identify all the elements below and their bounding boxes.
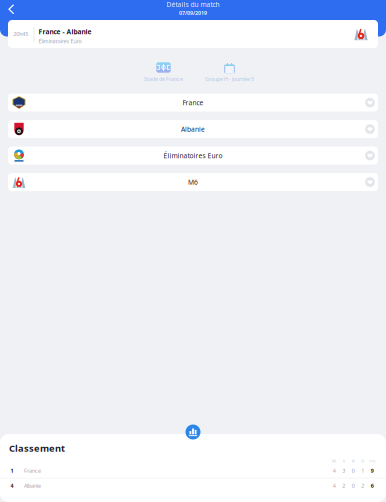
staticText: M — [332, 458, 336, 464]
staticText: 1 — [361, 467, 364, 474]
staticText: 6 — [371, 482, 374, 489]
staticText: 9 — [371, 467, 374, 474]
staticText: 4 — [333, 467, 336, 474]
staticText: Groupe H - Journée 5 — [205, 75, 254, 83]
button[interactable]: 1 — [0, 464, 386, 478]
button[interactable]: Ajouter aux favoris — [362, 120, 377, 138]
staticText: Classement — [9, 442, 65, 454]
staticText: 0 — [352, 467, 355, 474]
button[interactable]: Albanie — [8, 120, 378, 138]
button[interactable]: Éliminatoires Euro — [8, 147, 378, 165]
button[interactable]: Retour — [0, 0, 23, 16]
staticText: M6 — [188, 178, 198, 187]
staticText: Albanie — [24, 482, 41, 489]
staticText: 1 — [10, 467, 13, 474]
button[interactable]: Ajouter aux favoris — [362, 173, 377, 191]
staticText: France — [182, 98, 203, 107]
staticText: N — [352, 458, 355, 464]
staticText: 07/09/2019 — [179, 9, 207, 16]
staticText: Détails du match — [166, 0, 219, 9]
staticText: 2 — [342, 482, 345, 489]
staticText: D — [361, 458, 364, 464]
staticText: PTS — [369, 458, 375, 464]
button[interactable]: Ajouter aux favoris — [362, 94, 377, 112]
staticText: Éliminatoires Euro — [38, 38, 81, 45]
staticText: 4 — [10, 482, 13, 489]
staticText: 0 — [352, 482, 355, 489]
staticText: 20h45 — [13, 30, 28, 38]
staticText: Éliminatoires Euro — [163, 151, 222, 160]
button[interactable]: M6 — [8, 173, 378, 191]
button[interactable]: 4 — [0, 479, 386, 493]
staticText: France - Albanie — [38, 27, 91, 36]
button[interactable]: Ajouter aux favoris — [362, 147, 377, 165]
staticText: 2 — [361, 482, 364, 489]
staticText: Stade de France — [144, 75, 183, 83]
staticText: 4 — [333, 482, 336, 489]
staticText: France — [24, 467, 41, 474]
staticText: 3 — [342, 467, 345, 474]
staticText: Albanie — [181, 125, 205, 134]
button[interactable]: France — [8, 94, 378, 112]
staticText: V — [343, 458, 345, 464]
button[interactable]: Classement — [183, 422, 203, 442]
